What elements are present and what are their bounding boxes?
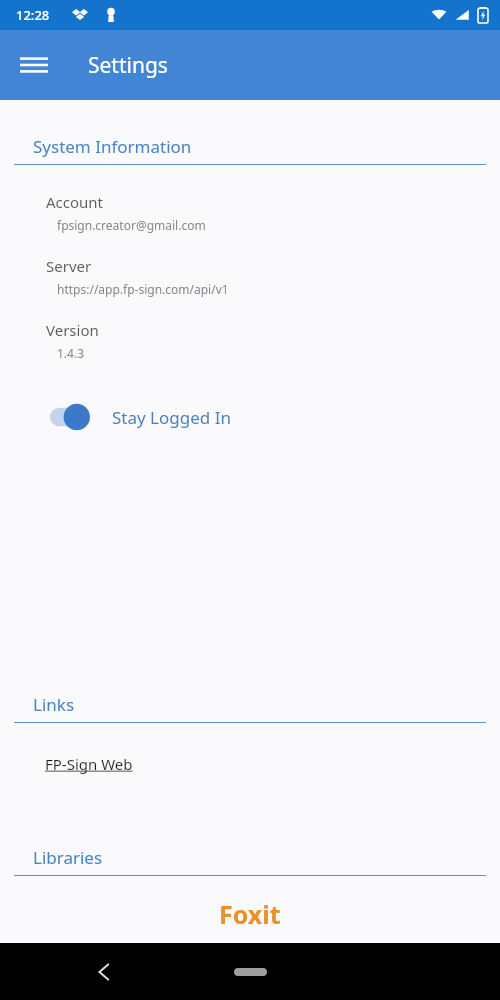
staticText: Links [33,693,75,716]
button[interactable]: Open navigation menu [10,41,58,89]
staticText: Settings [88,51,168,80]
staticText: https://app.fp-sign.com/api/v1 [57,281,229,297]
button[interactable]: Stay Logged In [0,398,500,436]
button[interactable]: Back [82,950,126,994]
staticText: Server [46,256,92,276]
staticText: Version [46,320,99,340]
button[interactable]: Foxit [215,897,285,925]
button[interactable]: Home [220,957,280,987]
staticText: Foxit [219,897,281,925]
staticText: Libraries [33,846,103,869]
staticText: fpsign.creator@gmail.com [57,217,206,233]
button[interactable]: FP-Sign Web [45,754,133,774]
staticText: Stay Logged In [112,406,231,429]
staticText: 1.4.3 [57,345,85,361]
staticText: Account [46,192,104,212]
staticText: System Information [33,135,192,158]
staticText: FP-Sign Web [45,754,133,774]
staticText: 12:28 [16,6,50,24]
